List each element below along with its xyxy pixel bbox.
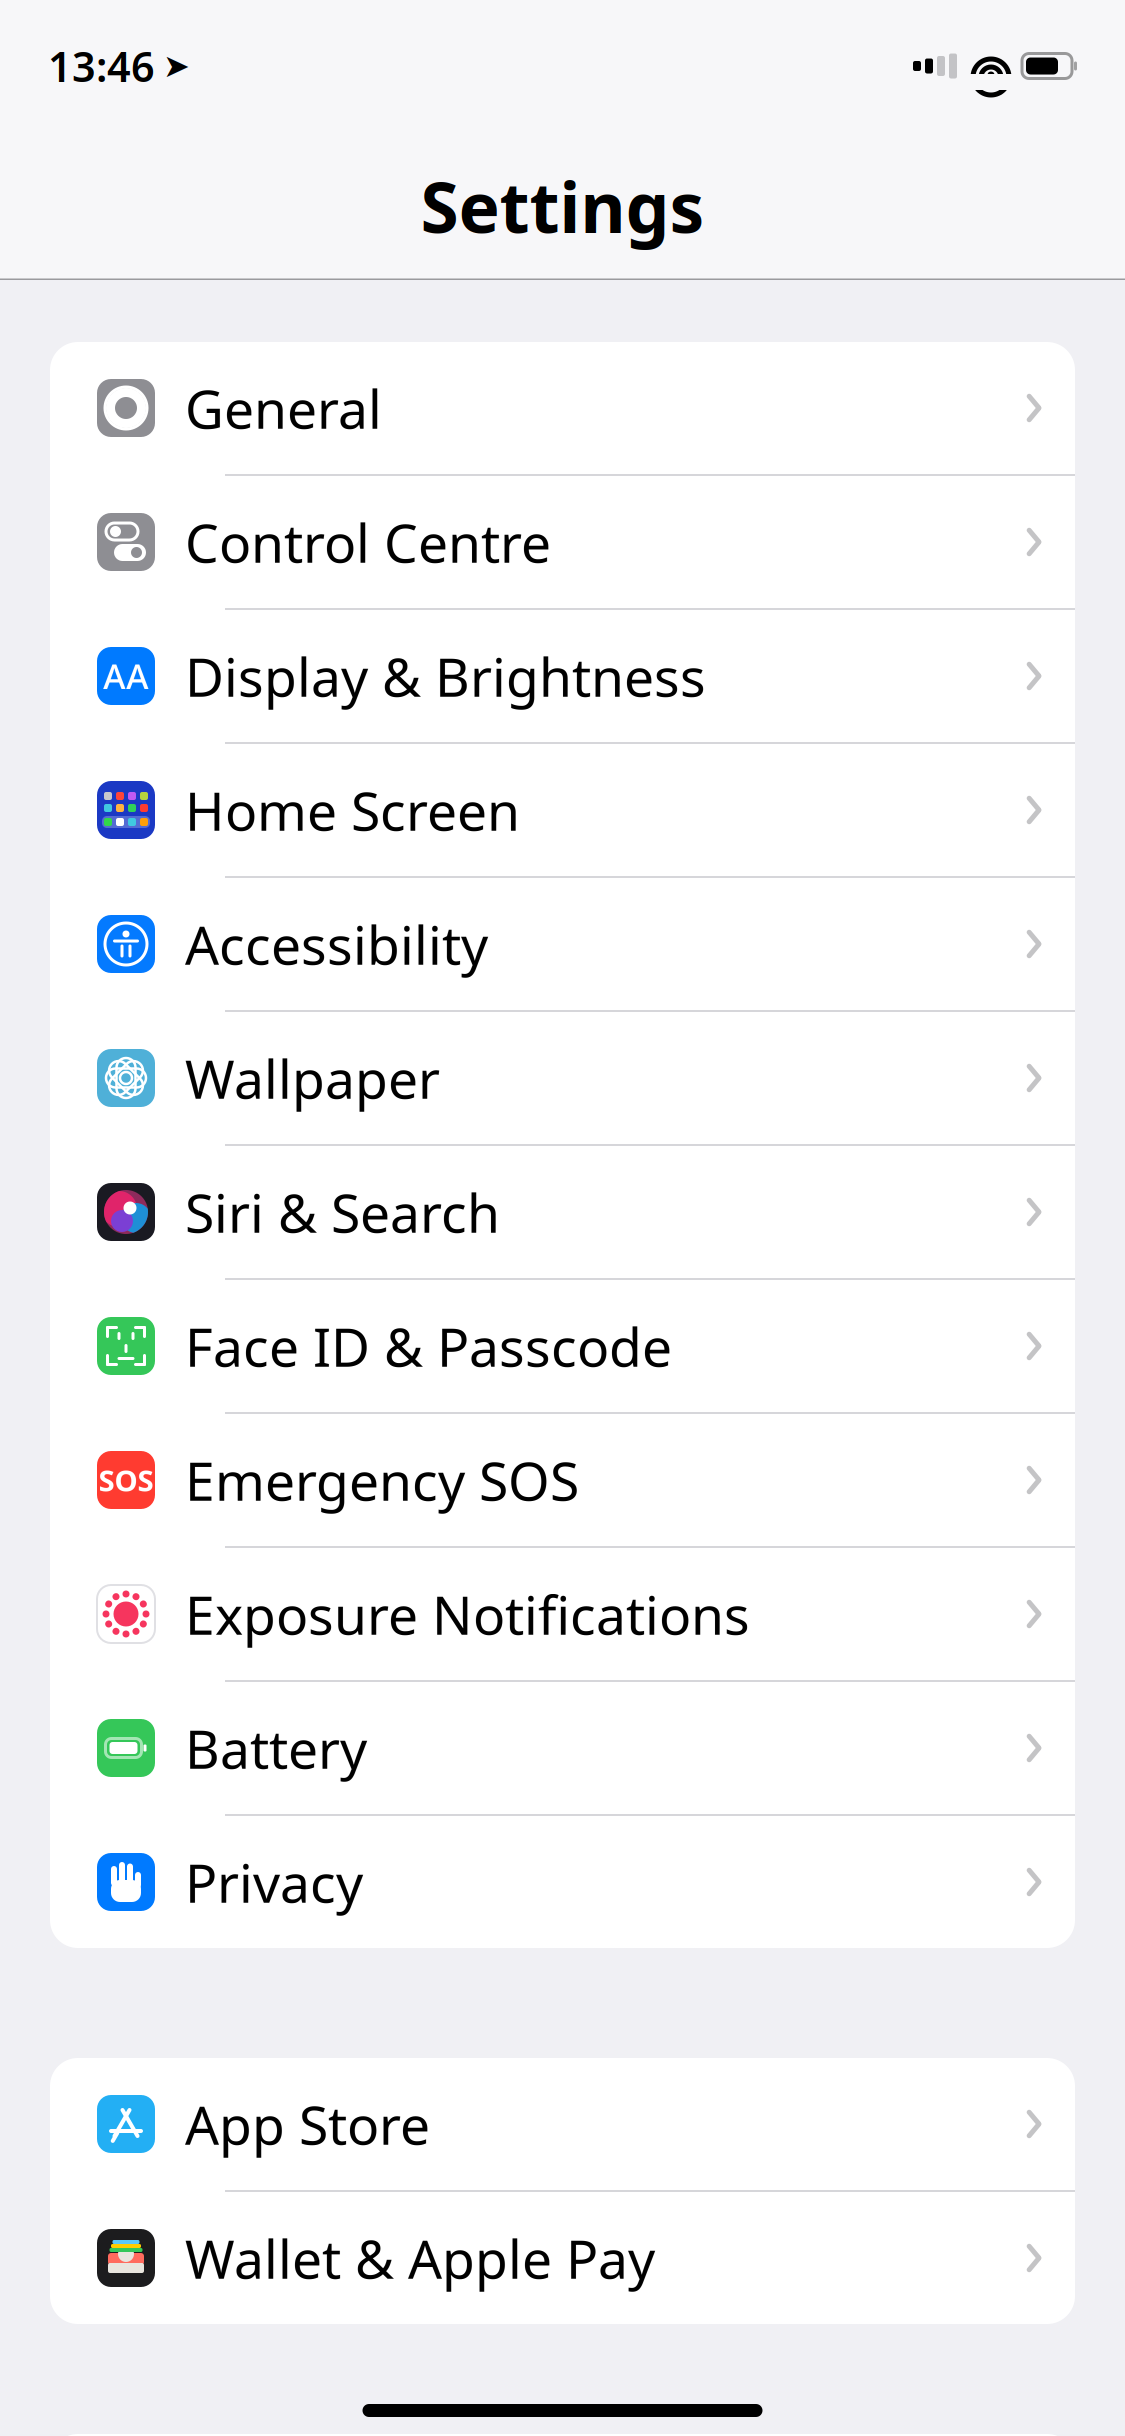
button[interactable]: Home Screen <box>50 744 1075 878</box>
staticText: Emergency SOS <box>185 1445 579 1515</box>
staticText: Display & Brightness <box>185 641 706 711</box>
staticText: AA <box>103 653 149 699</box>
staticText: Siri & Search <box>185 1177 500 1247</box>
button[interactable]: Accessibility <box>50 878 1075 1012</box>
button[interactable]: General <box>50 342 1075 476</box>
button[interactable]: Face ID & Passcode <box>50 1280 1075 1414</box>
staticText: General <box>185 373 382 443</box>
button[interactable]: Wallpaper <box>50 1012 1075 1146</box>
staticText: ➤ <box>163 48 190 84</box>
staticText: Accessibility <box>185 909 488 979</box>
staticText: 13:46 <box>48 39 155 93</box>
button[interactable]: Battery <box>50 1682 1075 1816</box>
staticText: Settings <box>420 160 704 252</box>
staticText: Exposure Notifications <box>185 1579 750 1649</box>
staticText: Wallet & Apple Pay <box>185 2223 655 2293</box>
button[interactable]: Control Centre <box>50 476 1075 610</box>
button[interactable]: SOS <box>50 1414 1075 1548</box>
staticText: Home Screen <box>185 775 520 845</box>
button[interactable]: Siri & Search <box>50 1146 1075 1280</box>
button[interactable]: App Store <box>50 2058 1075 2192</box>
staticText: SOS <box>98 1460 153 1499</box>
button[interactable]: Wallet & Apple Pay <box>50 2192 1075 2324</box>
staticText: Face ID & Passcode <box>185 1311 672 1381</box>
staticText: Privacy <box>185 1847 363 1917</box>
button[interactable]: Exposure Notifications <box>50 1548 1075 1682</box>
staticText: Control Centre <box>185 507 551 577</box>
staticText: App Store <box>185 2089 430 2159</box>
staticText: Wallpaper <box>185 1043 440 1113</box>
staticText: Battery <box>185 1713 367 1783</box>
button[interactable]: AA <box>50 610 1075 744</box>
button[interactable]: Privacy <box>50 1816 1075 1948</box>
